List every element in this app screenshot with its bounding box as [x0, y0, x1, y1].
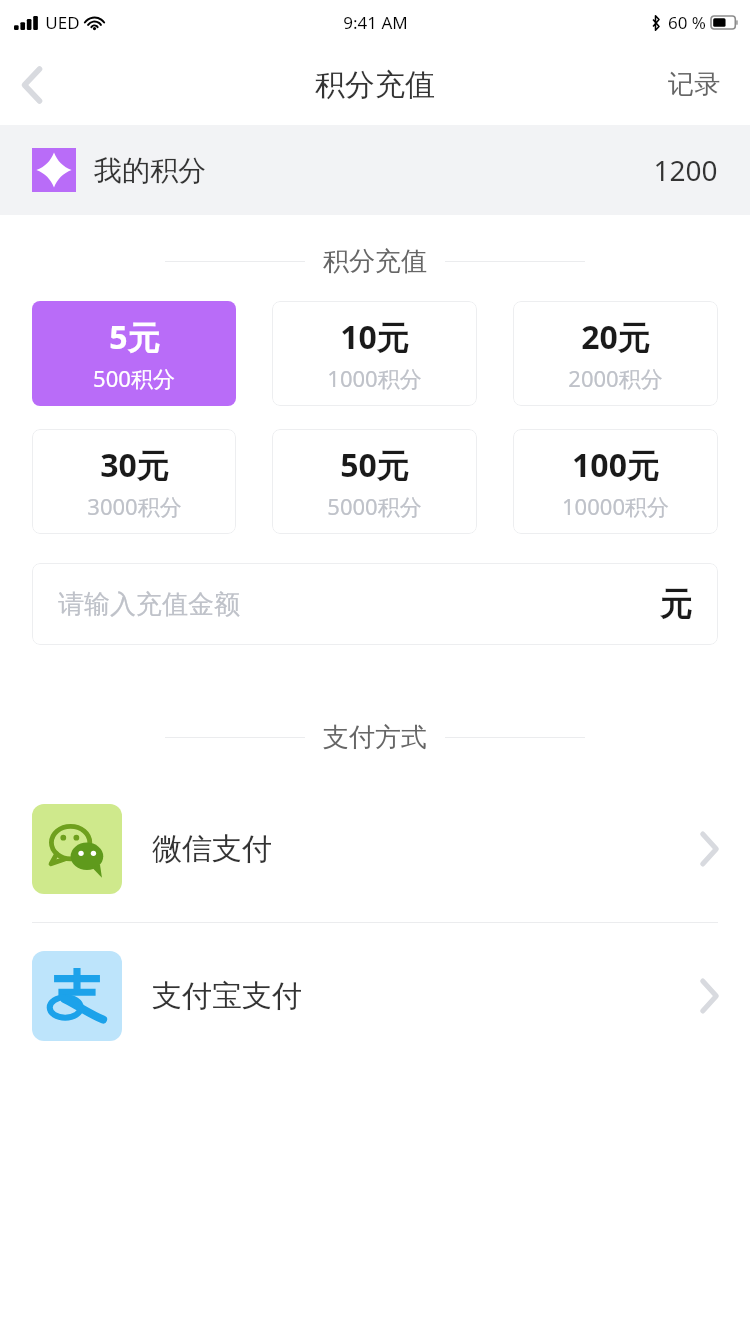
button[interactable]: 微信支付 — [0, 776, 750, 922]
staticText: 2000积分 — [568, 363, 663, 393]
staticText: 50元 — [340, 443, 409, 487]
staticText: 微信支付 — [152, 830, 272, 868]
staticText: 10元 — [340, 315, 409, 359]
button[interactable]: 5元 — [32, 301, 236, 406]
button[interactable]: Back — [0, 53, 64, 117]
staticText: 支付宝支付 — [152, 977, 302, 1015]
staticText: 500积分 — [93, 363, 175, 393]
staticText: 60 % — [668, 11, 706, 34]
staticText: 我的积分 — [94, 153, 206, 188]
button[interactable]: 50元 — [272, 429, 477, 534]
staticText: 1000积分 — [327, 363, 422, 393]
button[interactable]: 30元 — [32, 429, 236, 534]
button[interactable]: 支付宝支付 — [0, 923, 750, 1069]
staticText: 5元 — [109, 315, 160, 359]
staticText: 积分充值 — [315, 66, 435, 104]
staticText: 9:41 AM — [343, 11, 408, 34]
staticText: 支付方式 — [323, 721, 427, 754]
staticText: 1200 — [653, 151, 718, 189]
staticText: 请输入充值金额 — [58, 588, 240, 621]
button[interactable]: 请输入充值金额 — [32, 563, 718, 645]
button[interactable]: 20元 — [513, 301, 718, 406]
staticText: 5000积分 — [327, 491, 422, 521]
staticText: 元 — [660, 584, 692, 624]
staticText: 10000积分 — [562, 491, 669, 521]
staticText: UED — [45, 11, 80, 34]
staticText: 3000积分 — [87, 491, 182, 521]
staticText: 20元 — [581, 315, 650, 359]
staticText: 30元 — [100, 443, 169, 487]
staticText: 记录 — [668, 68, 720, 101]
button[interactable]: 100元 — [513, 429, 718, 534]
staticText: 积分充值 — [323, 245, 427, 278]
button[interactable]: 10元 — [272, 301, 477, 406]
button[interactable]: 记录 — [660, 58, 728, 111]
staticText: 100元 — [572, 443, 659, 487]
